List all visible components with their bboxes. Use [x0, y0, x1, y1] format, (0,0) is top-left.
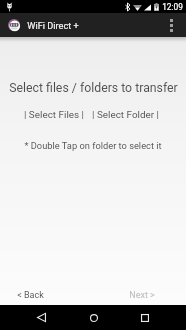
- button[interactable]: Home: [79, 305, 108, 330]
- staticText: | Select Files |: [24, 109, 84, 121]
- button[interactable]: More options: [161, 13, 181, 37]
- button[interactable]: | Select Folder |: [89, 106, 162, 124]
- staticText: WiFi Direct +: [27, 20, 79, 31]
- button[interactable]: Back: [27, 305, 56, 330]
- staticText: < Back: [17, 290, 44, 301]
- button[interactable]: Recent apps: [130, 305, 159, 330]
- staticText: | Select Folder |: [92, 109, 159, 121]
- button[interactable]: | Select Files |: [21, 106, 87, 124]
- button[interactable]: Next >: [93, 281, 186, 305]
- staticText: 12:09: [162, 2, 183, 12]
- staticText: Select files / folders to transfer: [9, 81, 178, 95]
- button[interactable]: < Back: [0, 281, 93, 305]
- staticText: * Double Tap on folder to select it: [24, 140, 162, 151]
- staticText: Next >: [129, 290, 155, 301]
